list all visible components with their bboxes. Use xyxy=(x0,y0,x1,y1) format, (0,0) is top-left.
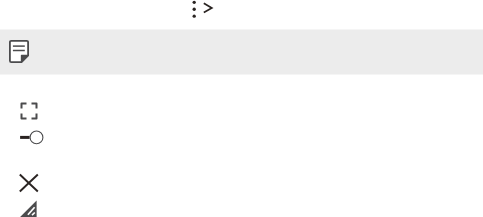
button[interactable]: Crop xyxy=(20,102,38,120)
button[interactable]: Next xyxy=(201,1,214,15)
button[interactable] xyxy=(0,29,483,74)
button[interactable]: More options xyxy=(189,0,200,18)
button[interactable]: Note xyxy=(9,40,29,63)
button[interactable]: Ruler xyxy=(20,200,37,217)
button[interactable]: Close xyxy=(18,173,39,193)
button[interactable]: Adjust xyxy=(19,129,45,146)
